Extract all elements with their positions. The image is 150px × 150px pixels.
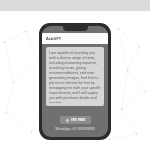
staticText: TRY FREE <box>71 118 86 122</box>
staticText: WhatsApp: +91 9090909090 <box>55 127 95 131</box>
button[interactable]: AskGPT <box>42 33 108 44</box>
staticText: AskGPT <box>46 36 61 41</box>
staticText: I am capable of assisting you with a div… <box>49 50 101 103</box>
other: Chat <box>66 119 69 122</box>
button[interactable]: WhatsApp: +91 9090909090 <box>55 127 95 131</box>
button[interactable]: I am capable of assisting you with a div… <box>46 47 104 106</box>
button[interactable]: Chat <box>60 116 91 124</box>
